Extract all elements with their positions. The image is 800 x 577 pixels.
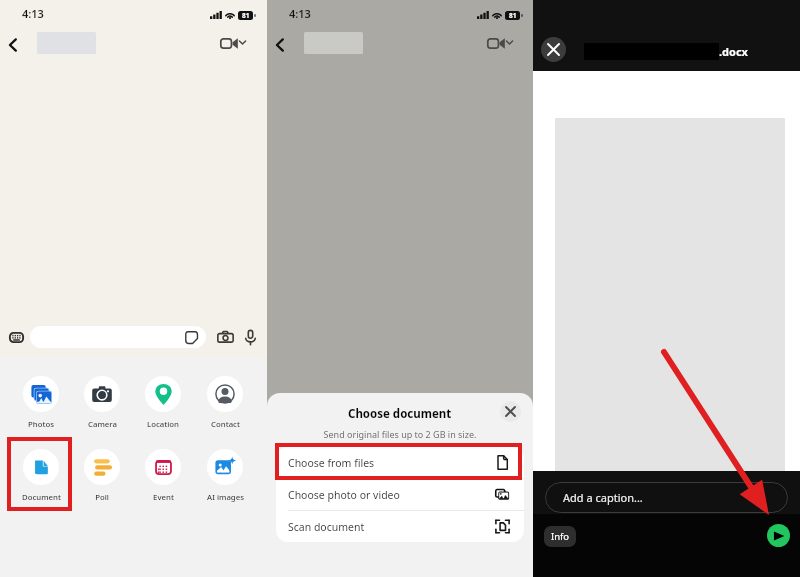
staticText: Camera — [88, 419, 117, 430]
button[interactable]: Camera — [215, 327, 236, 348]
staticText: Photos — [28, 419, 54, 430]
button[interactable]: Back — [0, 32, 25, 58]
staticText: Choose photo or video — [288, 488, 400, 502]
button[interactable]: AI images — [195, 449, 255, 503]
button[interactable]: Photos — [11, 376, 71, 430]
button[interactable]: Choose from files — [276, 447, 524, 478]
staticText: 4:13 — [289, 6, 311, 21]
button[interactable]: Camera — [72, 376, 132, 430]
staticText: Document — [22, 492, 61, 503]
button[interactable]: Back — [267, 32, 292, 58]
staticText: AI images — [207, 492, 244, 503]
button[interactable]: Close — [500, 401, 521, 422]
staticText: Send original files up to 2 GB in size. — [267, 428, 533, 440]
staticText: .docx — [719, 44, 748, 59]
button[interactable]: Video call — [483, 32, 515, 54]
button[interactable]: Scan document — [276, 511, 524, 542]
button[interactable] — [30, 326, 206, 348]
button[interactable]: Close — [541, 37, 566, 62]
staticText: Poll — [95, 492, 109, 503]
staticText: Contact — [211, 419, 240, 430]
staticText: 81 — [509, 11, 517, 20]
button[interactable]: Choose photo or video — [276, 479, 524, 510]
staticText: Location — [147, 419, 179, 430]
button[interactable]: Event — [133, 449, 193, 503]
staticText: Scan document — [288, 520, 365, 534]
button[interactable]: Add a caption... — [545, 482, 788, 513]
button[interactable]: Poll — [72, 449, 132, 503]
staticText: 81 — [242, 11, 250, 20]
button[interactable]: Document — [11, 449, 71, 503]
button[interactable]: Location — [133, 376, 193, 430]
staticText: Event — [153, 492, 174, 503]
staticText: Info — [551, 530, 570, 543]
staticText: Add a caption... — [563, 490, 643, 505]
button[interactable]: Send — [767, 524, 790, 547]
button[interactable]: Contact — [195, 376, 255, 430]
button[interactable]: Video call — [216, 32, 248, 54]
staticText: Choose document — [348, 406, 452, 422]
button[interactable]: Keyboard — [8, 328, 25, 346]
staticText: Choose from files — [288, 456, 375, 470]
button[interactable]: Info — [544, 526, 576, 547]
staticText: 4:13 — [22, 6, 44, 21]
button[interactable]: Voice message — [240, 327, 261, 348]
